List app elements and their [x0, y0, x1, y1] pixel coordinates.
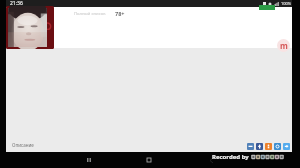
button[interactable]: Полный список	[74, 10, 125, 17]
button[interactable]: Mail	[274, 143, 281, 150]
button[interactable]: Home	[141, 152, 157, 168]
button[interactable]: Camera overlay	[6, 6, 54, 49]
staticText: Полный список	[74, 11, 106, 17]
button[interactable]: Odnoklassniki	[265, 143, 272, 150]
staticText: m	[280, 40, 288, 51]
button[interactable]: Back	[203, 152, 219, 168]
button[interactable]: Facebook	[256, 143, 263, 150]
button[interactable]: Описание	[12, 142, 34, 148]
button[interactable]: Mobizen menu	[277, 39, 290, 52]
staticText: Recorded by	[212, 153, 251, 161]
staticText: 21:36	[10, 0, 23, 7]
staticText: 78+	[115, 10, 125, 17]
button[interactable]: Twitter	[283, 143, 290, 150]
staticText: 100%	[281, 1, 292, 6]
button[interactable]: Recents	[81, 152, 97, 168]
button[interactable]: VK	[247, 143, 254, 150]
